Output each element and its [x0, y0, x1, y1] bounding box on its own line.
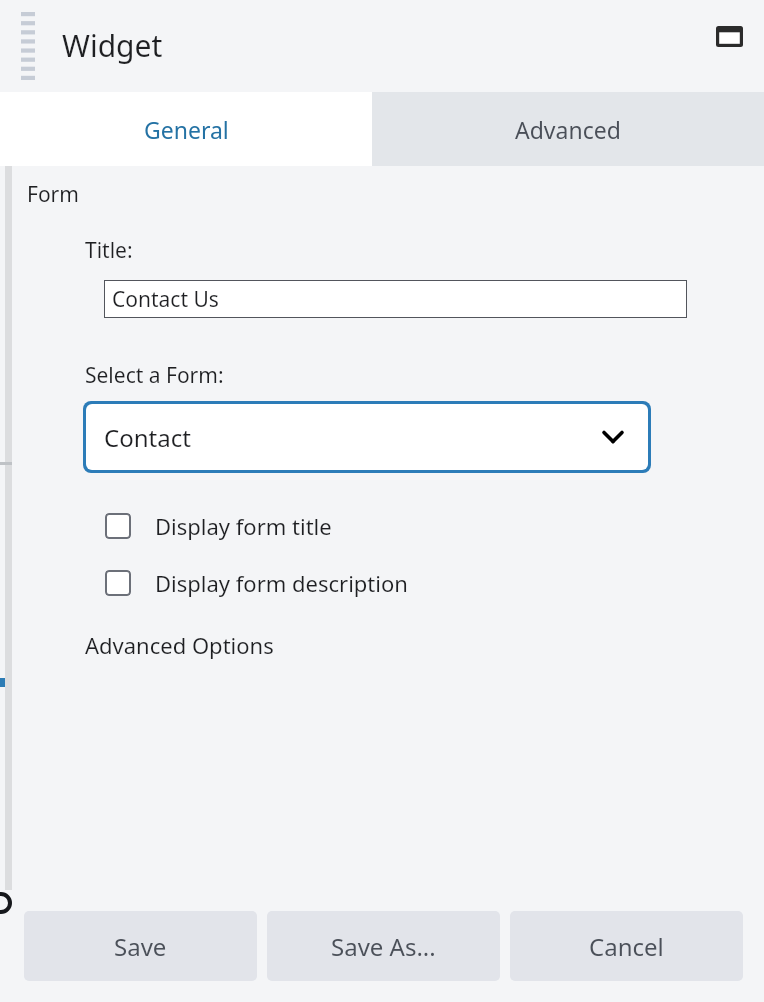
staticText: Display form title	[155, 511, 332, 541]
staticText: Save	[114, 930, 167, 963]
staticText: Select a Form:	[85, 361, 224, 390]
button[interactable]: Advanced	[372, 92, 764, 166]
button[interactable]: Display form description	[105, 568, 408, 598]
staticText: Advanced	[515, 114, 621, 145]
staticText: Form	[27, 180, 79, 209]
staticText: Title:	[85, 236, 133, 265]
staticText: Cancel	[589, 930, 664, 963]
button[interactable]: Contact Us	[104, 280, 687, 318]
button[interactable]: Open in window	[707, 14, 751, 58]
button[interactable]: Cancel	[510, 911, 743, 981]
staticText: Display form description	[155, 568, 408, 598]
staticText: Widget	[62, 25, 163, 66]
staticText: Save As...	[331, 930, 436, 963]
button[interactable]: Display form title	[105, 511, 332, 541]
staticText: General	[144, 114, 229, 145]
staticText: Contact	[104, 421, 191, 454]
button[interactable]: Save	[24, 911, 257, 981]
button[interactable]: General	[0, 92, 372, 166]
button[interactable]: Contact	[83, 401, 651, 473]
button[interactable]: Advanced Options	[85, 630, 274, 660]
button[interactable]: Save As...	[267, 911, 500, 981]
staticText: Contact Us	[112, 285, 219, 314]
